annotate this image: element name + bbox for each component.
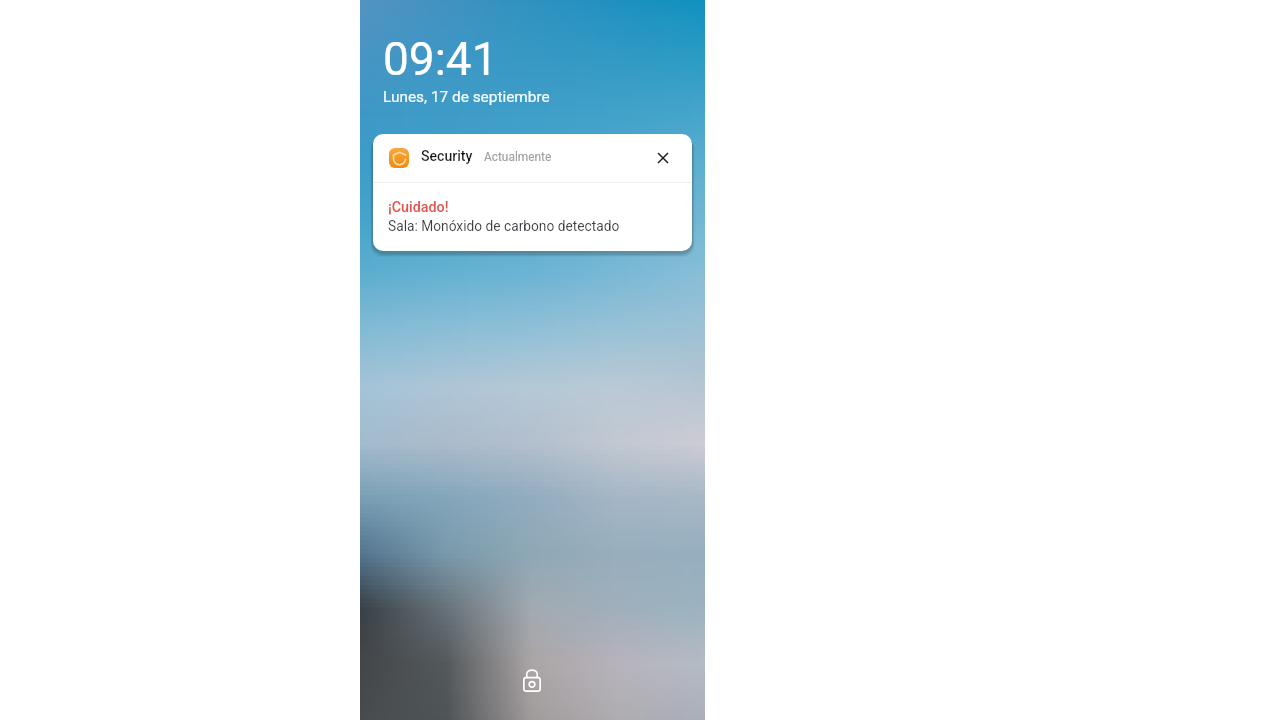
button[interactable]: Close notification bbox=[651, 146, 675, 170]
staticText: Actualmente bbox=[484, 150, 552, 164]
button[interactable]: Security bbox=[373, 134, 692, 251]
staticText: 09:41 bbox=[383, 32, 498, 86]
staticText: ¡Cuidado! bbox=[388, 199, 449, 216]
button[interactable]: Unlock bbox=[512, 660, 552, 700]
staticText: Sala: Monóxido de carbono detectado bbox=[388, 218, 620, 234]
staticText: Lunes, 17 de septiembre bbox=[383, 88, 550, 106]
staticText: Security bbox=[421, 148, 473, 165]
